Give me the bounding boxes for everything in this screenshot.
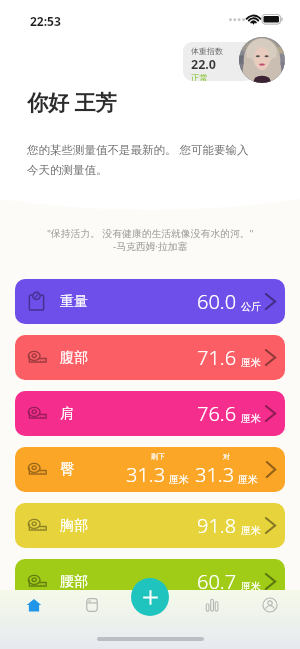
staticText: 22.0 — [191, 56, 216, 73]
staticText: 60.0 — [197, 288, 237, 315]
button[interactable]: Diary — [72, 590, 111, 620]
staticText: 厘米 — [169, 473, 189, 486]
staticText: -马克西姆·拉加塞 — [113, 240, 188, 253]
staticText: 重量 — [60, 293, 88, 311]
staticText: 对 — [223, 452, 230, 461]
staticText: 厘米 — [241, 356, 261, 369]
staticText: "保持活力。 没有健康的生活就像没有水的河。" — [47, 227, 254, 240]
button[interactable]: Profile — [250, 590, 289, 620]
button[interactable]: Home — [14, 590, 53, 620]
button[interactable]: 体重指数 — [183, 42, 263, 81]
staticText: 腰部 — [60, 573, 88, 591]
button[interactable]: 臀 — [15, 447, 285, 492]
button[interactable]: 重量 — [15, 279, 285, 324]
staticText: 厘米 — [241, 524, 261, 537]
staticText: 厘米 — [238, 473, 258, 486]
staticText: 剩下 — [151, 452, 165, 461]
staticText: 91.8 — [197, 512, 237, 539]
staticText: 你好 王芳 — [27, 88, 117, 117]
staticText: 您的某些测量值不是最新的。 您可能要输入 今天的测量值。 — [27, 142, 249, 177]
button[interactable]: 腰部 — [15, 559, 285, 604]
staticText: 腹部 — [60, 349, 88, 367]
staticText: 厘米 — [241, 412, 261, 425]
staticText: 60.7 — [197, 568, 237, 595]
staticText: 臀 — [60, 461, 74, 479]
staticText: 厘米 — [241, 580, 261, 593]
staticText: 76.6 — [197, 400, 237, 427]
staticText: 体重指数 — [191, 46, 223, 56]
button[interactable]: Add measurement — [131, 578, 169, 616]
staticText: 正常 — [191, 73, 208, 81]
staticText: 71.6 — [197, 344, 237, 371]
staticText: 胸部 — [60, 517, 88, 535]
button[interactable]: Profile photo — [239, 37, 285, 83]
button[interactable]: 肩 — [15, 391, 285, 436]
staticText: 31.3 — [126, 461, 166, 488]
button[interactable]: 腹部 — [15, 335, 285, 380]
staticText: 22:53 — [30, 13, 61, 29]
staticText: 肩 — [60, 405, 74, 423]
staticText: 公斤 — [241, 300, 261, 313]
button[interactable]: 胸部 — [15, 503, 285, 548]
button[interactable]: Stats — [192, 590, 231, 620]
staticText: 31.3 — [195, 461, 235, 488]
